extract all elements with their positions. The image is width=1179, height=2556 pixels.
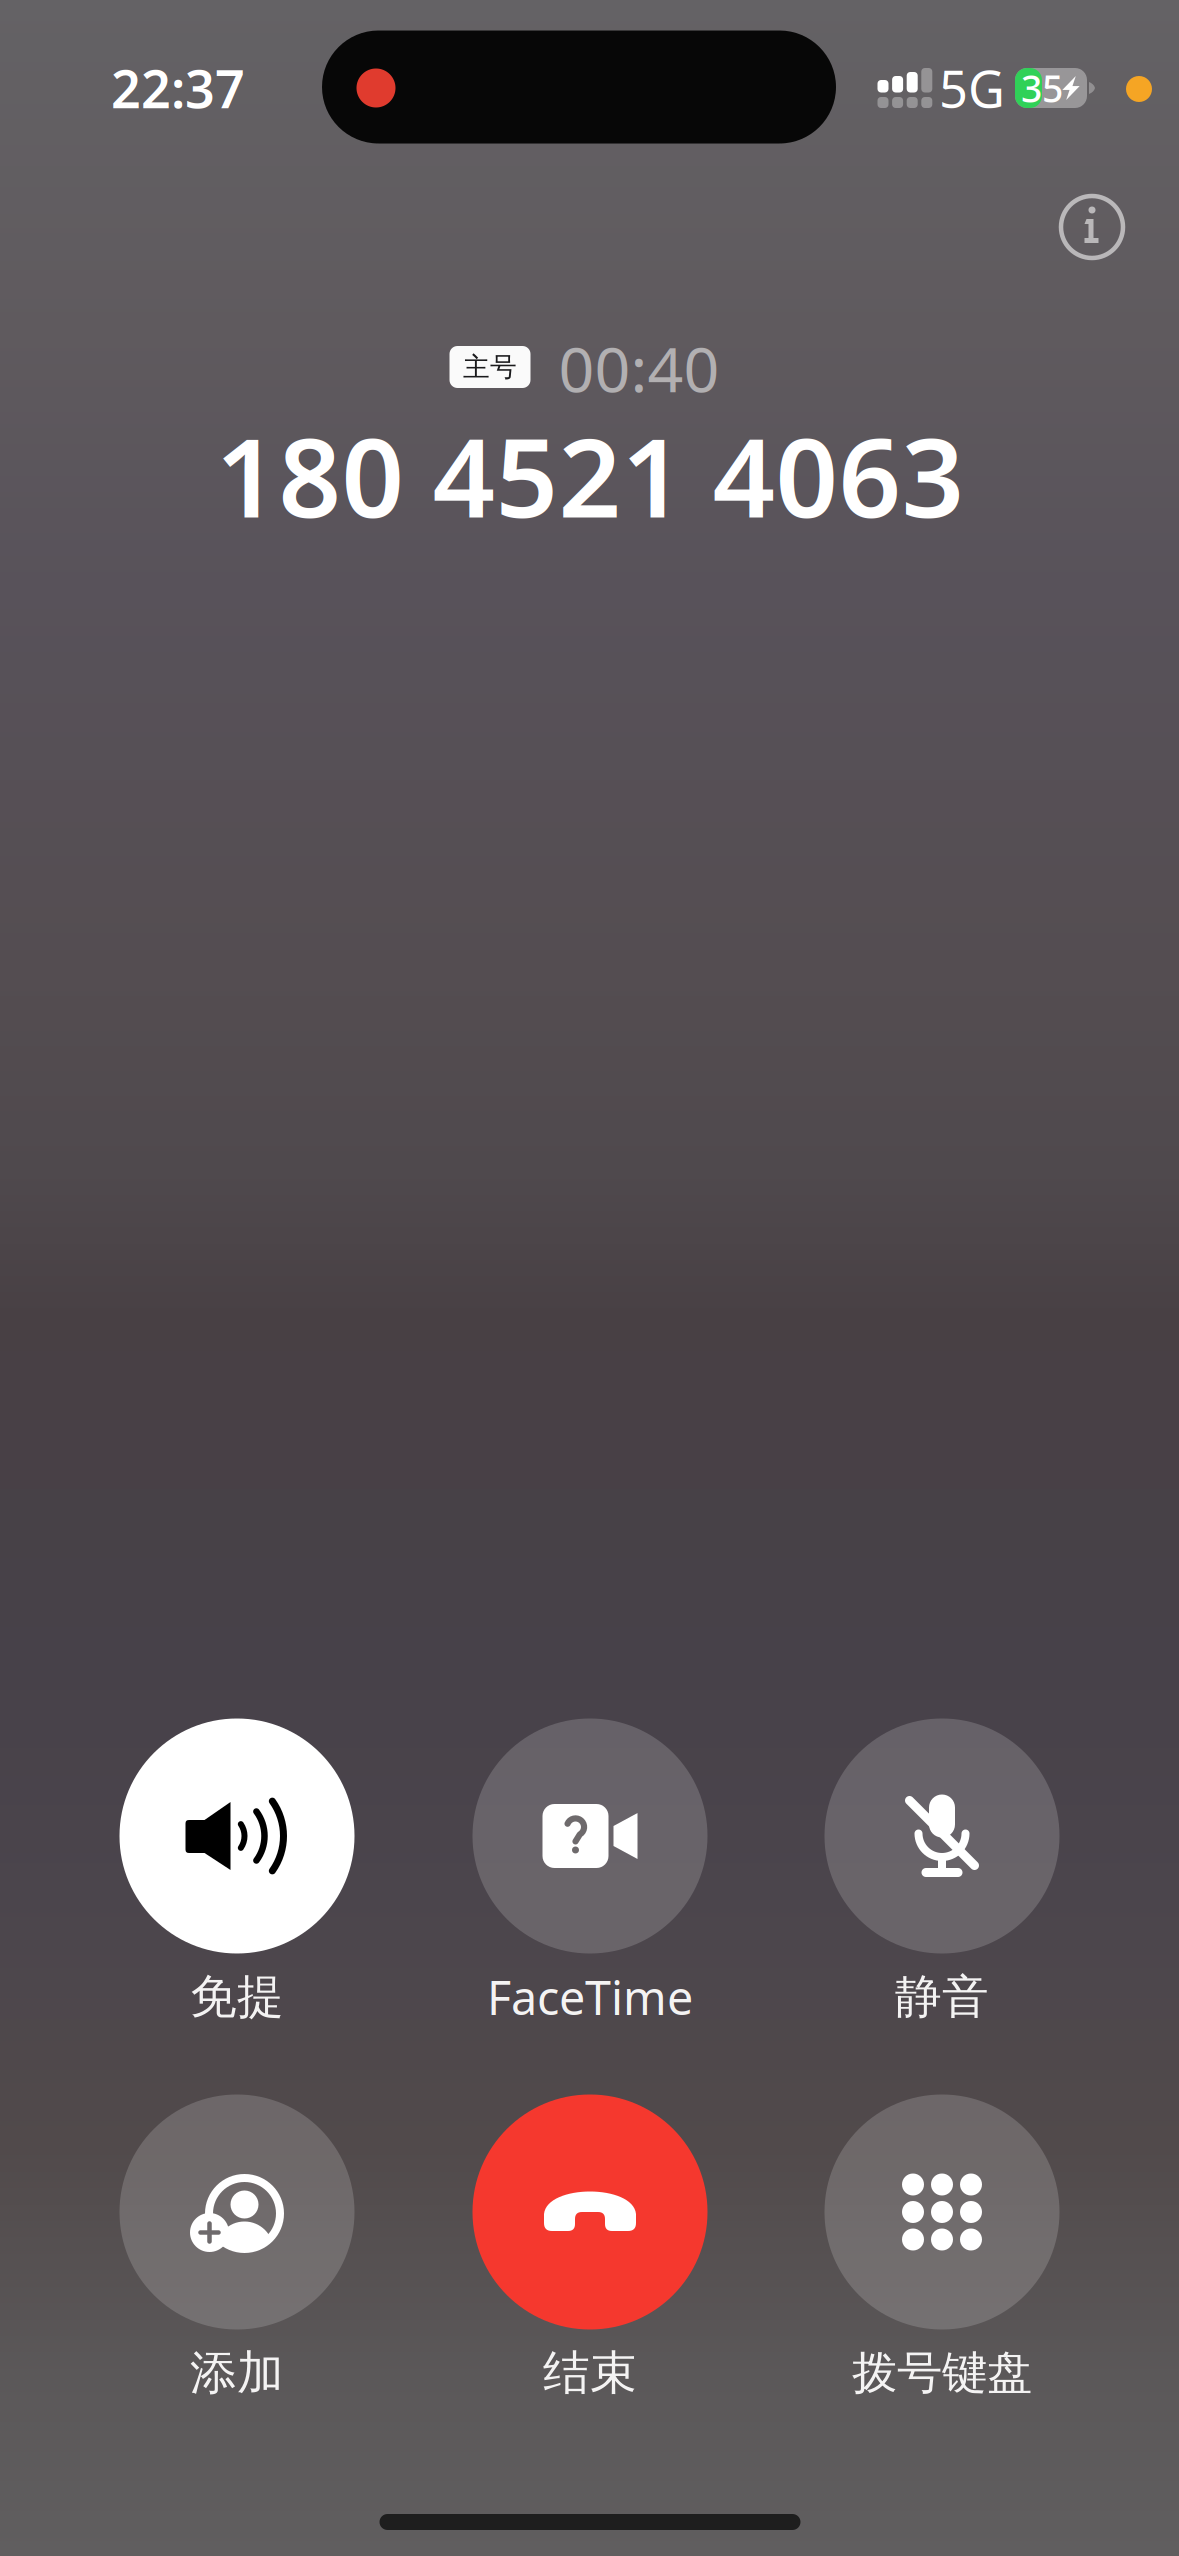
staticText: 180 4521 4063 <box>215 402 964 548</box>
staticText: 拨号键盘 <box>852 2345 1032 2401</box>
button[interactable]: FaceTime <box>420 1718 760 2100</box>
staticText: 35 <box>1021 63 1063 113</box>
staticText: 静音 <box>895 1968 989 2026</box>
staticText: 5G <box>939 54 1005 122</box>
staticText: 22:37 <box>111 53 245 123</box>
staticText: 添加 <box>190 2344 284 2402</box>
staticText: 免提 <box>190 1968 284 2026</box>
button[interactable]: Call details <box>1037 172 1147 282</box>
button[interactable]: 添加 <box>67 2094 407 2476</box>
staticText: 结束 <box>543 2344 637 2402</box>
staticText: FaceTime <box>487 1966 693 2028</box>
staticText: 主号 <box>463 351 517 383</box>
button[interactable]: 静音 <box>772 1718 1112 2100</box>
button[interactable]: 结束 <box>420 2094 760 2476</box>
button[interactable]: 免提 <box>67 1718 407 2100</box>
button[interactable]: 拨号键盘 <box>772 2094 1112 2476</box>
staticText: 00:40 <box>558 326 719 410</box>
